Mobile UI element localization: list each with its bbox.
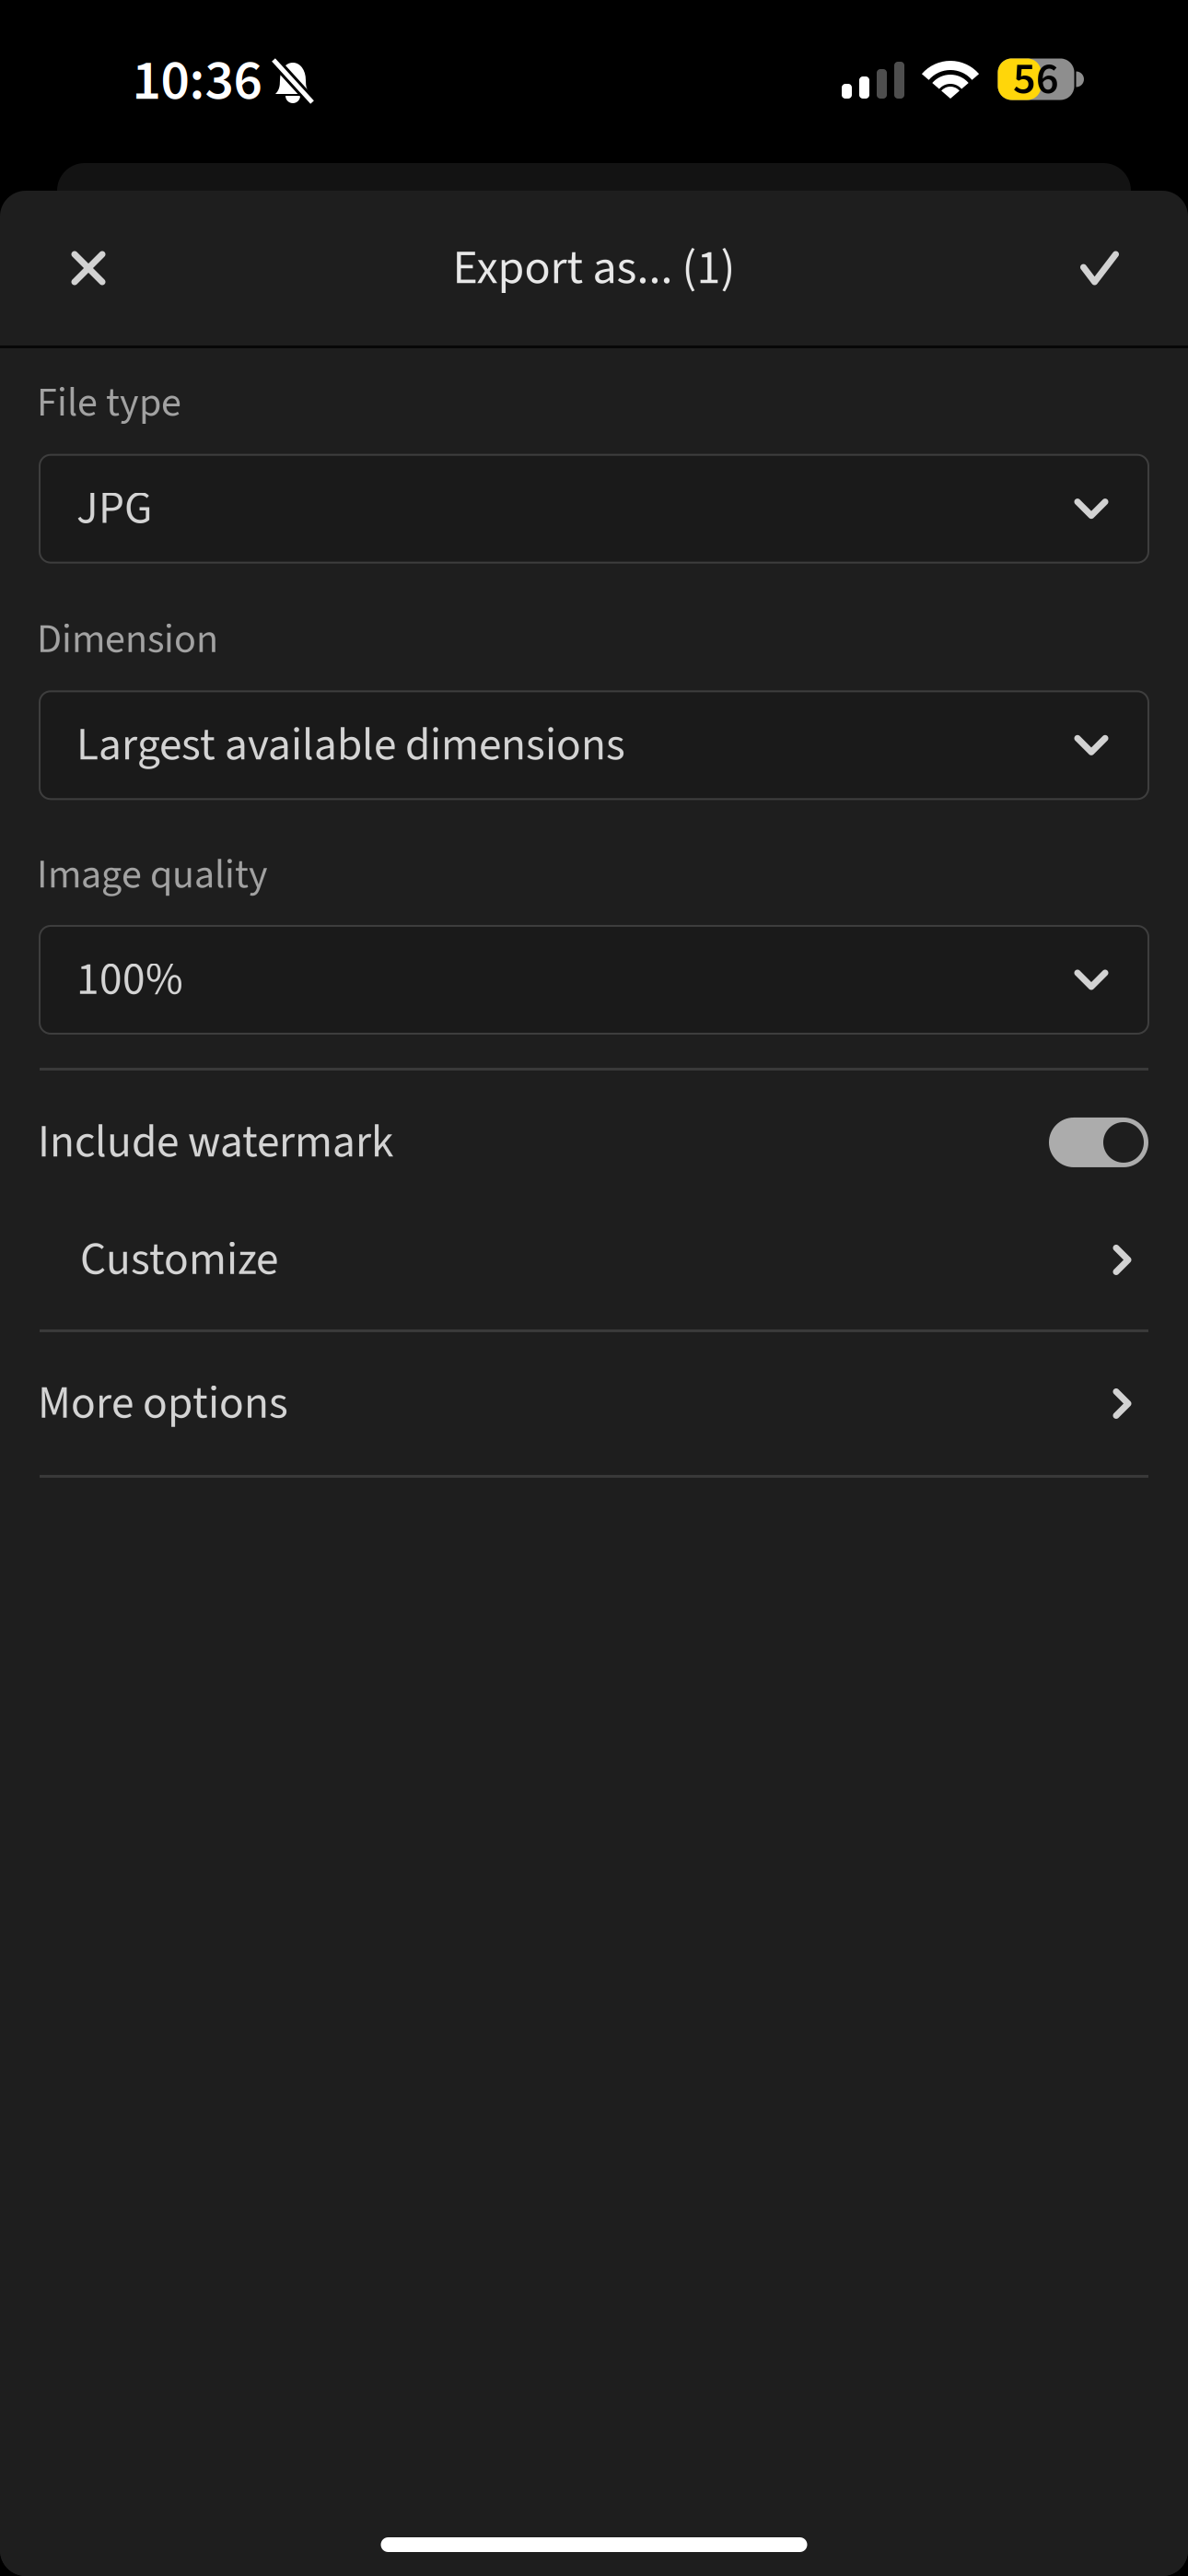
staticText: 56 [1013,48,1059,111]
staticText: 10:36 [132,41,262,121]
staticText: File type [37,374,181,432]
staticText: Customize [80,1227,278,1292]
staticText: Include watermark [38,1110,393,1175]
button[interactable]: Close [37,191,140,345]
staticText: Largest available dimensions [76,713,625,777]
button[interactable]: Done [1048,191,1151,345]
button[interactable]: Customize [0,1190,1188,1329]
staticText: Image quality [37,846,268,904]
button[interactable]: JPG [0,455,1188,563]
button[interactable]: Largest available dimensions [0,691,1188,799]
staticText: More options [38,1371,288,1436]
staticText: 100% [76,947,183,1012]
staticText: JPG [76,476,152,541]
staticText: Dimension [37,611,218,668]
button[interactable]: Include watermark [0,1095,1188,1190]
button[interactable]: More options [0,1332,1188,1475]
staticText: Export as... (1) [453,234,735,302]
button[interactable]: 100% [0,926,1188,1034]
